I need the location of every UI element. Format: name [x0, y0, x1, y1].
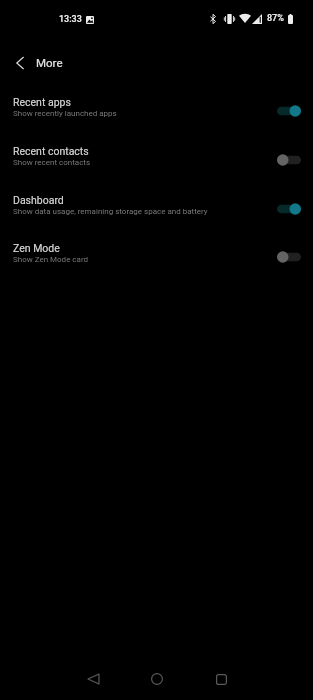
staticText: 13:33	[59, 14, 82, 25]
button[interactable]: Recent apps	[189, 659, 253, 699]
staticText: Show data usage, remaining storage space…	[13, 207, 208, 216]
button[interactable]: Zen Mode	[0, 228, 313, 277]
button[interactable]: Recent contacts	[0, 131, 313, 180]
staticText: Show recently launched apps	[13, 109, 117, 118]
staticText: Recent contacts	[13, 145, 89, 157]
button[interactable]: Dashboard	[0, 180, 313, 229]
staticText: More	[36, 56, 63, 69]
button[interactable]: Home	[125, 659, 189, 699]
staticText: Show recent contacts	[13, 158, 91, 167]
button[interactable]: Recent apps	[0, 82, 313, 131]
staticText: Recent apps	[13, 96, 71, 108]
button[interactable]: Navigate up	[0, 44, 36, 80]
staticText: Zen Mode	[13, 242, 60, 254]
staticText: Dashboard	[13, 194, 64, 206]
button[interactable]: Back	[61, 659, 125, 699]
staticText: 87%	[267, 13, 284, 24]
staticText: Show Zen Mode card	[13, 255, 89, 264]
